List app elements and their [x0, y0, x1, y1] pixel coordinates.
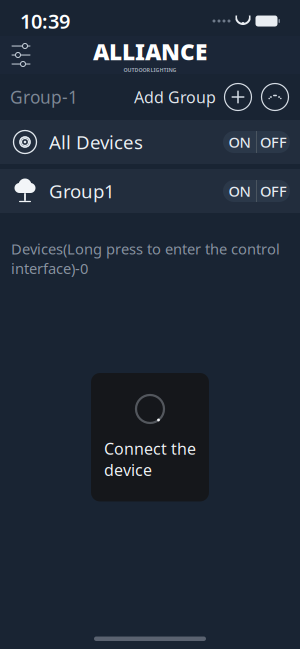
button[interactable]: Collapse group list [261, 78, 289, 116]
staticText: OUTDOOR LIGHTING [123, 66, 176, 74]
button[interactable]: ON [223, 131, 256, 153]
staticText: Group1 [49, 179, 115, 203]
button[interactable]: ON [223, 180, 256, 202]
staticText: 10:39 [20, 8, 70, 34]
staticText: Group-1 [10, 85, 78, 108]
staticText: OFF [260, 181, 287, 201]
staticText: All Devices [49, 130, 143, 154]
staticText: Connect the device [104, 438, 196, 480]
staticText: Add Group [134, 86, 216, 108]
staticText: ON [228, 132, 250, 152]
staticText: ALLIANCE [93, 36, 207, 66]
button[interactable]: Group1 [0, 169, 300, 213]
button[interactable]: OFF [257, 180, 290, 202]
staticText: OFF [260, 132, 287, 152]
button[interactable]: Settings [0, 36, 42, 74]
staticText: ON [228, 181, 250, 201]
button[interactable]: All Devices [0, 120, 300, 164]
staticText: Devices(Long press to enter the control … [11, 239, 280, 278]
button[interactable]: OFF [257, 131, 290, 153]
button[interactable]: Add Group [134, 78, 252, 116]
